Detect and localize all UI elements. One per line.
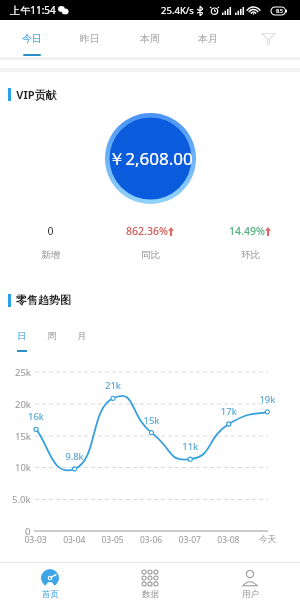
button[interactable]: 用户 [200,563,300,600]
staticText: 数据 [142,589,159,600]
button[interactable]: 14.49% [200,224,300,261]
staticText: 0 [47,224,54,238]
staticText: 上午11:54 [10,3,56,17]
staticText: 月 [77,330,87,342]
button[interactable]: 数据 [100,563,200,600]
staticText: 本月 [198,32,218,45]
staticText: 日 [17,330,27,342]
button[interactable]: 月 [67,330,97,356]
staticText: 862.36% [126,224,168,238]
staticText: ￥2,608.00 [108,147,193,170]
staticText: 本周 [140,32,160,45]
button[interactable]: 周 [37,330,67,356]
staticText: 新增 [41,249,60,261]
staticText: 用户 [242,589,259,600]
button[interactable]: 0 [0,224,100,261]
staticText: 首页 [42,589,59,600]
button[interactable]: 日 [7,330,37,356]
staticText: 85 [276,7,283,15]
staticText: 环比 [241,249,260,261]
staticText: 今日 [22,32,42,45]
staticText: 同比 [141,249,160,261]
button[interactable]: Filter [256,20,280,57]
staticText: 零售趋势图 [16,293,71,307]
button[interactable]: 今日 [3,20,61,57]
staticText: VIP贡献 [16,87,57,102]
button[interactable]: 本月 [179,20,237,57]
button[interactable]: 本周 [121,20,179,57]
staticText: 25.4K/s [161,4,194,17]
staticText: 14.49% [229,224,265,238]
button[interactable]: 昨日 [61,20,119,57]
button[interactable]: 首页 [0,563,100,600]
staticText: 周 [47,330,57,342]
button[interactable]: 862.36% [100,224,200,261]
staticText: 昨日 [80,32,100,45]
